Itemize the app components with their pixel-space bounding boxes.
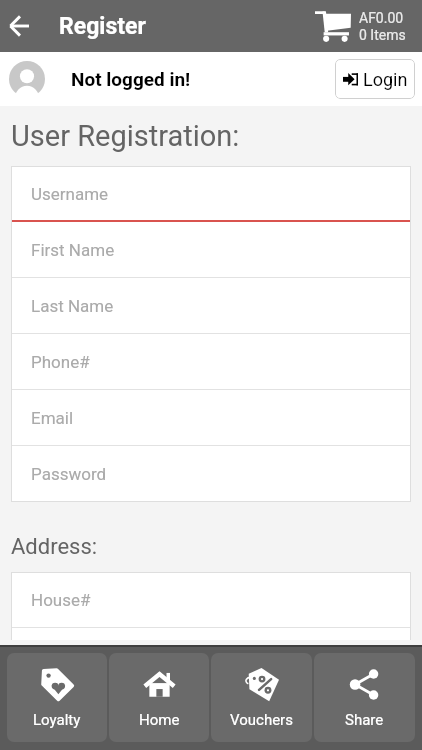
staticText: Loyalty [33, 711, 81, 729]
button[interactable]: Phone# [11, 334, 411, 390]
button[interactable]: Username [11, 166, 411, 222]
staticText: House# [31, 590, 91, 610]
button[interactable]: Last Name [11, 278, 411, 334]
staticText: Vouchers [230, 711, 293, 729]
button[interactable]: Vouchers [211, 653, 312, 742]
button[interactable]: Share [314, 653, 415, 742]
staticText: Not logged in! [71, 68, 191, 90]
staticText: Home [139, 711, 180, 729]
staticText: 0 Items [359, 27, 406, 43]
staticText: Share [345, 711, 384, 729]
button[interactable]: House# [11, 572, 411, 628]
staticText: Email [31, 408, 74, 428]
staticText: Login [363, 69, 408, 90]
staticText: Last Name [31, 296, 114, 316]
staticText: First Name [31, 240, 115, 260]
button[interactable]: First Name [11, 222, 411, 278]
staticText: Username [31, 184, 109, 204]
button[interactable]: Login [335, 59, 415, 99]
button[interactable]: AF0.00 [315, 10, 406, 43]
staticText: Address: [11, 534, 98, 560]
button[interactable]: Home [109, 653, 209, 742]
button[interactable]: Loyalty [7, 653, 107, 742]
button[interactable]: Back [1, 8, 37, 44]
staticText: Phone# [31, 352, 90, 372]
staticText: AF0.00 [359, 10, 404, 26]
staticText: Register [59, 13, 146, 40]
button[interactable]: Email [11, 390, 411, 446]
button[interactable]: Password [11, 446, 411, 502]
staticText: Password [31, 464, 107, 484]
staticText: User Registration: [11, 119, 240, 153]
